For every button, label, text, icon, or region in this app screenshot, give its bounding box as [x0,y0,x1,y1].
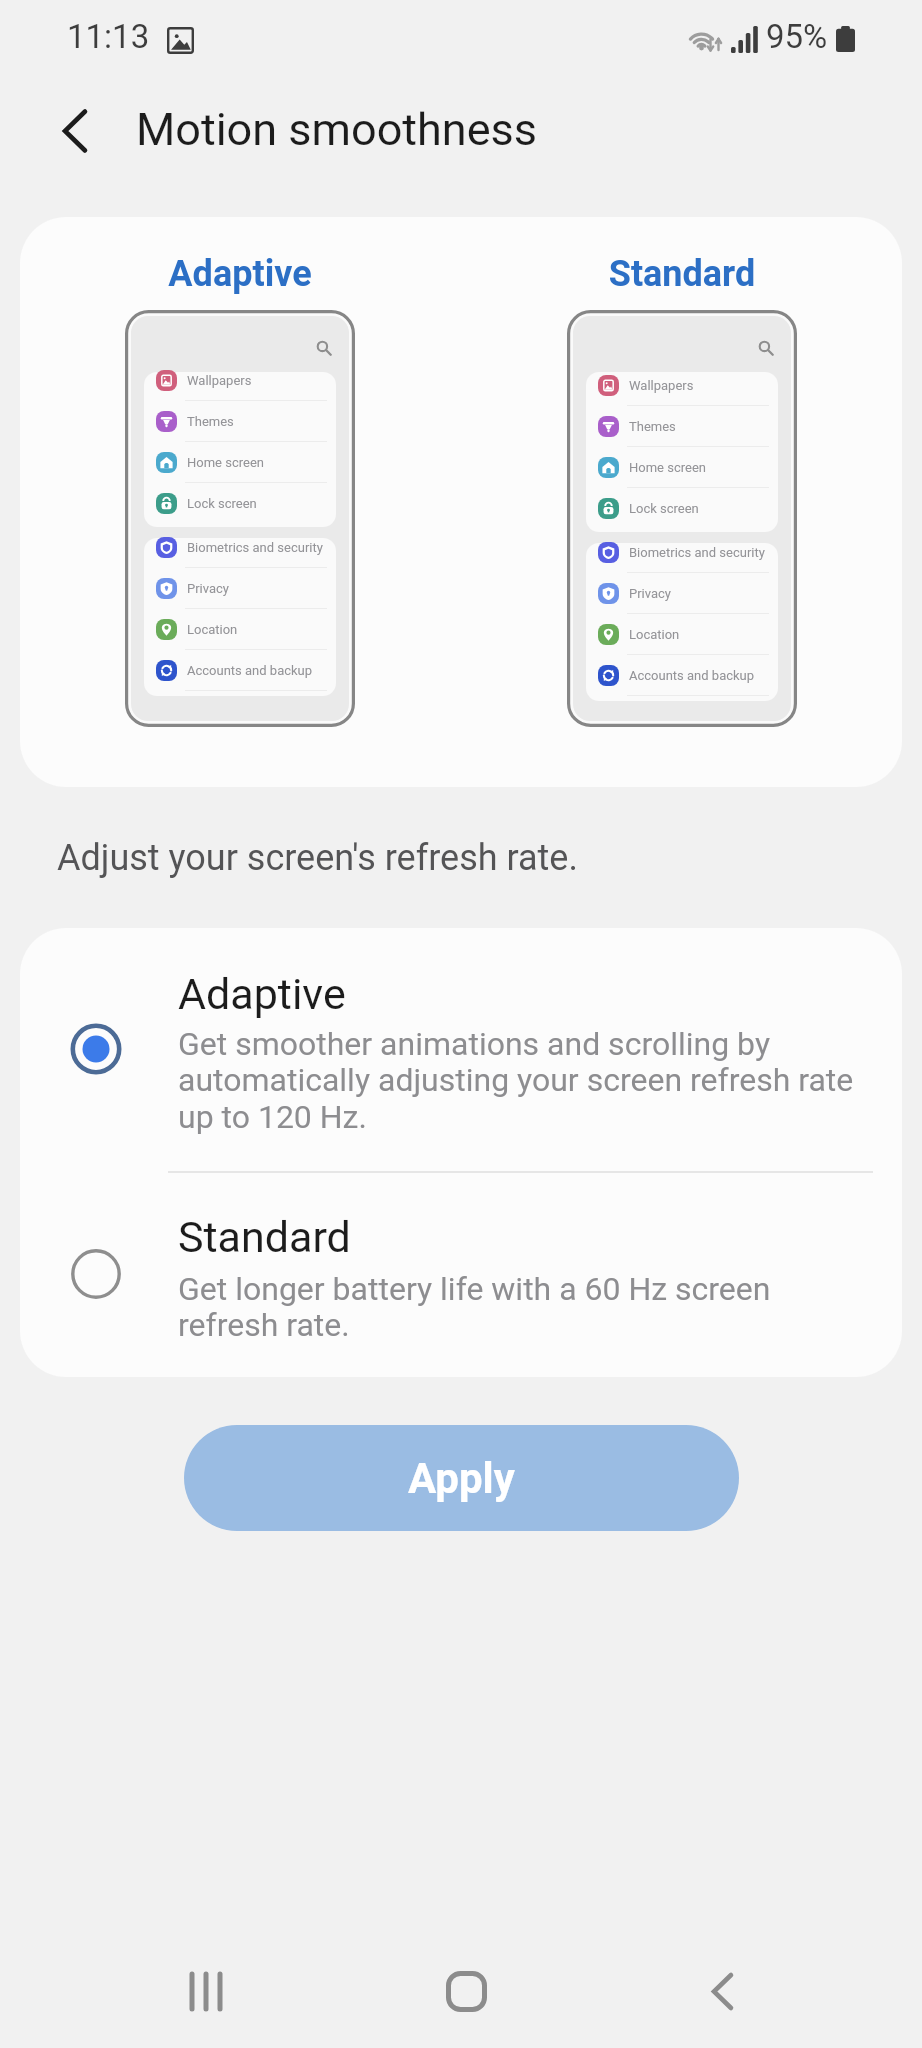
staticText: Accounts and backup [187,663,313,678]
staticText: Privacy [629,586,671,601]
staticText: Home screen [629,460,706,475]
staticText: Location [187,622,238,637]
staticText: Motion smoothness [136,103,537,156]
staticText: Standard [178,1212,351,1262]
staticText: Themes [187,414,234,429]
staticText: Themes [629,419,676,434]
staticText: Wallpapers [187,373,252,388]
staticText: Standard [567,253,797,295]
staticText: Lock screen [629,501,699,516]
staticText: Lock screen [187,496,257,511]
button[interactable]: Adaptive [20,928,902,1171]
staticText: 11:13 [67,17,150,56]
button[interactable]: Navigate up [34,95,114,175]
staticText: Get longer battery life with a 60 Hz scr… [178,1270,868,1344]
staticText: Apply [408,1454,515,1503]
staticText: Get smoother animations and scrolling by… [178,1025,868,1136]
staticText: Wallpapers [629,378,694,393]
staticText: Home screen [187,455,264,470]
staticText: Adjust your screen's refresh rate. [57,837,578,879]
button[interactable]: Recent apps [152,1948,262,2048]
button[interactable]: Back [667,1948,777,2048]
button[interactable]: Apply [184,1425,739,1531]
staticText: Adaptive [125,253,355,295]
staticText: Privacy [187,581,229,596]
staticText: Adaptive [178,969,346,1019]
button[interactable]: Standard [20,1173,902,1377]
staticText: 95% [766,17,828,56]
staticText: Location [629,627,680,642]
staticText: Accounts and backup [629,668,755,683]
staticText: Biometrics and security [629,545,765,560]
button[interactable]: Home [406,1948,516,2048]
staticText: Biometrics and security [187,540,323,555]
